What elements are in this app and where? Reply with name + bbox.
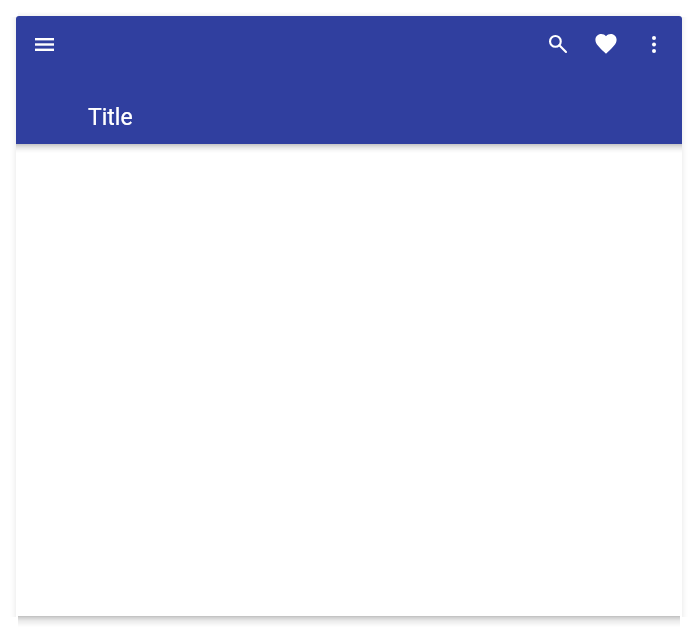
button[interactable]: Search bbox=[534, 20, 582, 68]
button[interactable]: Favorite bbox=[582, 20, 630, 68]
staticText: Title bbox=[88, 104, 133, 131]
button[interactable]: More options bbox=[630, 20, 678, 68]
button[interactable]: Menu bbox=[20, 20, 68, 68]
